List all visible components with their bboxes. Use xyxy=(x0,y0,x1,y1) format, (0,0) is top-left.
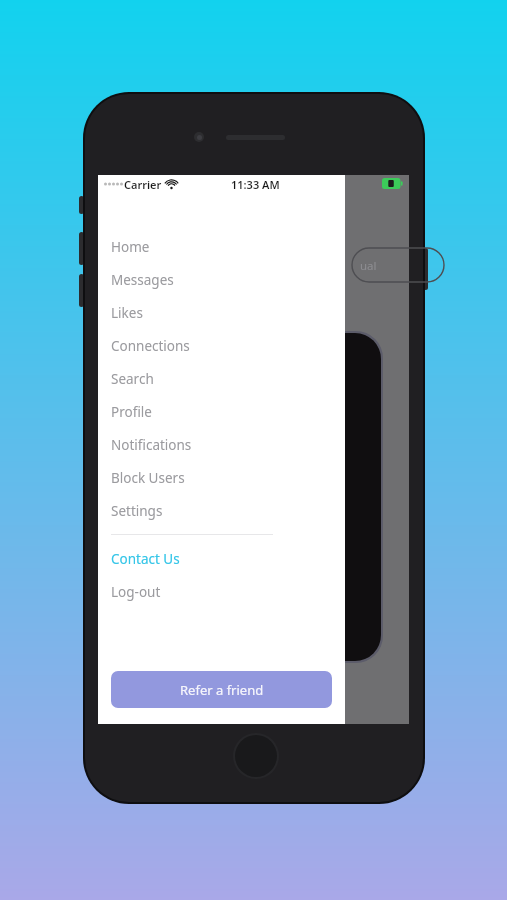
button[interactable]: Connections xyxy=(98,329,345,362)
staticText: 11:33 AM xyxy=(231,177,280,192)
staticText: ual xyxy=(360,258,377,274)
staticText: Notifications xyxy=(111,436,192,454)
staticText: Block Users xyxy=(111,469,185,487)
staticText: Profile xyxy=(111,403,152,421)
button[interactable]: Settings xyxy=(98,494,345,527)
staticText: Carrier xyxy=(124,177,162,192)
staticText: Refer a friend xyxy=(180,681,264,699)
button[interactable]: Profile xyxy=(98,395,345,428)
button[interactable]: Messages xyxy=(98,263,345,296)
other: Home button xyxy=(233,733,279,779)
staticText: Contact Us xyxy=(111,550,180,568)
button[interactable]: Contact Us xyxy=(98,542,345,575)
staticText: Settings xyxy=(111,502,163,520)
staticText: Likes xyxy=(111,304,143,322)
button[interactable]: Block Users xyxy=(98,461,345,494)
staticText: Search xyxy=(111,370,154,388)
staticText: Connections xyxy=(111,337,190,355)
button[interactable]: Home xyxy=(98,230,345,263)
staticText: Messages xyxy=(111,271,174,289)
button[interactable]: Search xyxy=(98,362,345,395)
button[interactable]: Refer a friend xyxy=(111,671,332,708)
staticText: Home xyxy=(111,238,150,256)
staticText: Log-out xyxy=(111,583,161,601)
button[interactable]: Notifications xyxy=(98,428,345,461)
button[interactable]: Likes xyxy=(98,296,345,329)
button[interactable]: Log-out xyxy=(98,575,345,608)
